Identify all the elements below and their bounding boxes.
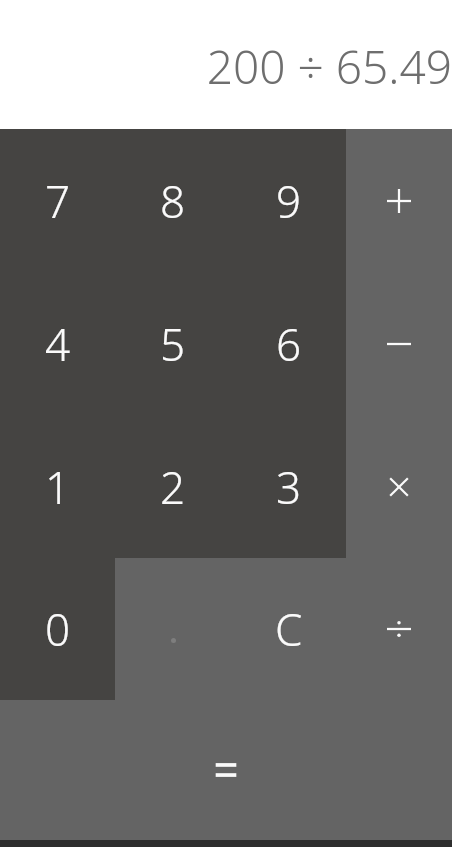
button[interactable]: Equals <box>0 700 452 840</box>
staticText: 7 <box>45 171 71 231</box>
staticText: 5 <box>160 314 186 374</box>
staticText: 2 <box>160 457 186 517</box>
button[interactable]: Multiply <box>346 415 452 558</box>
button[interactable]: 2 <box>115 415 231 558</box>
button[interactable]: 6 <box>231 272 346 415</box>
button[interactable]: Divide <box>346 558 452 700</box>
staticText: 9 <box>276 171 302 231</box>
staticText: 8 <box>160 171 186 231</box>
button[interactable]: 4 <box>0 272 115 415</box>
button[interactable]: 3 <box>231 415 346 558</box>
staticText: 1 <box>45 457 71 517</box>
button[interactable]: 9 <box>231 129 346 272</box>
staticText: C <box>275 599 303 659</box>
button[interactable]: 0 <box>0 558 115 700</box>
staticText: 3 <box>276 457 302 517</box>
staticText: 4 <box>45 314 71 374</box>
button[interactable]: 5 <box>115 272 231 415</box>
button[interactable]: 8 <box>115 129 231 272</box>
button[interactable]: 7 <box>0 129 115 272</box>
button[interactable]: Plus <box>346 129 452 272</box>
staticText: 0 <box>45 599 71 659</box>
staticText: 6 <box>276 314 302 374</box>
button[interactable]: 1 <box>0 415 115 558</box>
button[interactable]: C <box>231 558 346 700</box>
staticText: 200 ÷ 65.49 <box>0 35 452 98</box>
button[interactable]: Minus <box>346 272 452 415</box>
